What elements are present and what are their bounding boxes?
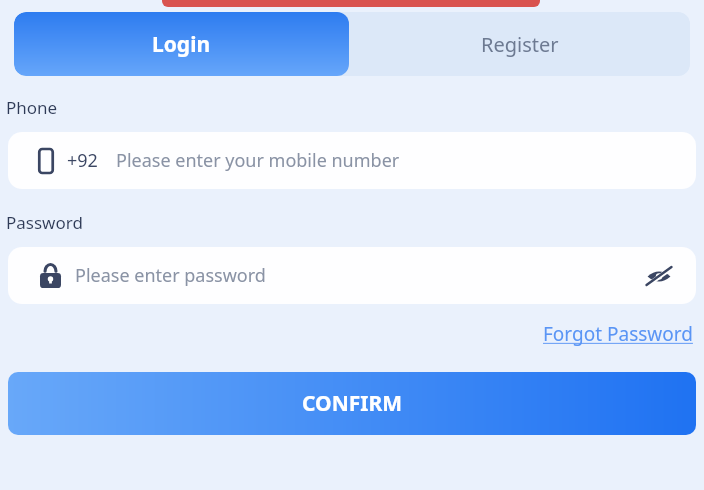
button[interactable]: Login [14, 12, 349, 76]
button[interactable]: Please enter password [8, 247, 696, 304]
staticText: Forgot Password [543, 321, 693, 347]
button[interactable]: +92 [8, 132, 696, 189]
button[interactable]: Register [349, 12, 690, 76]
staticText: Please enter your mobile number [116, 148, 400, 173]
staticText: CONFIRM [302, 389, 403, 418]
staticText: Phone [6, 96, 58, 119]
staticText: Register [481, 31, 559, 58]
staticText: Password [6, 211, 83, 234]
staticText: Please enter password [75, 263, 266, 288]
staticText: Login [152, 30, 211, 59]
button[interactable]: Forgot Password [543, 321, 693, 347]
button[interactable]: Show password [642, 259, 676, 293]
staticText: +92 [67, 148, 98, 173]
button[interactable]: CONFIRM [8, 372, 696, 435]
